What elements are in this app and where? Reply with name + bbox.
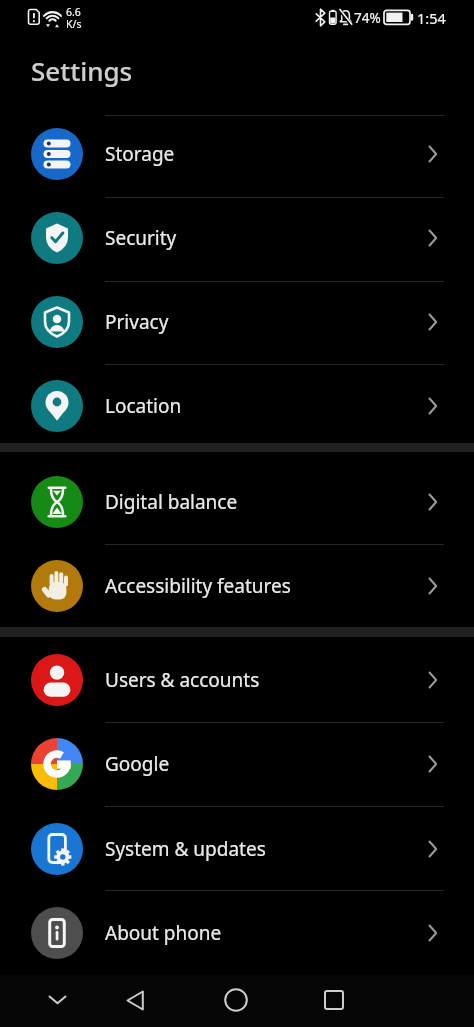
staticText: Location (105, 393, 182, 419)
button[interactable]: Storage (0, 112, 474, 196)
staticText: About phone (105, 920, 222, 946)
staticText: Accessibility features (105, 573, 291, 599)
staticText: Users & accounts (105, 667, 260, 693)
button[interactable] (314, 980, 354, 1020)
staticText: Privacy (105, 309, 169, 335)
button[interactable]: Google (0, 722, 474, 806)
staticText: Storage (105, 141, 175, 167)
button[interactable]: Accessibility features (0, 544, 474, 628)
button[interactable] (216, 980, 256, 1020)
button[interactable]: Security (0, 196, 474, 280)
button[interactable]: About phone (0, 891, 474, 975)
staticText: Settings (31, 53, 133, 88)
button[interactable]: Users & accounts (0, 638, 474, 722)
staticText: Digital balance (105, 489, 238, 515)
staticText: Security (105, 225, 177, 251)
staticText: 6.6 K/s (66, 5, 82, 31)
staticText: 74% (354, 9, 381, 27)
button[interactable]: Privacy (0, 280, 474, 364)
button[interactable]: Digital balance (0, 460, 474, 544)
staticText: Google (105, 751, 170, 777)
button[interactable] (115, 980, 155, 1020)
staticText: System & updates (105, 836, 266, 862)
staticText: 1:54 (417, 8, 446, 28)
button[interactable]: Location (0, 364, 474, 448)
button[interactable] (37, 980, 77, 1020)
button[interactable]: System & updates (0, 807, 474, 891)
